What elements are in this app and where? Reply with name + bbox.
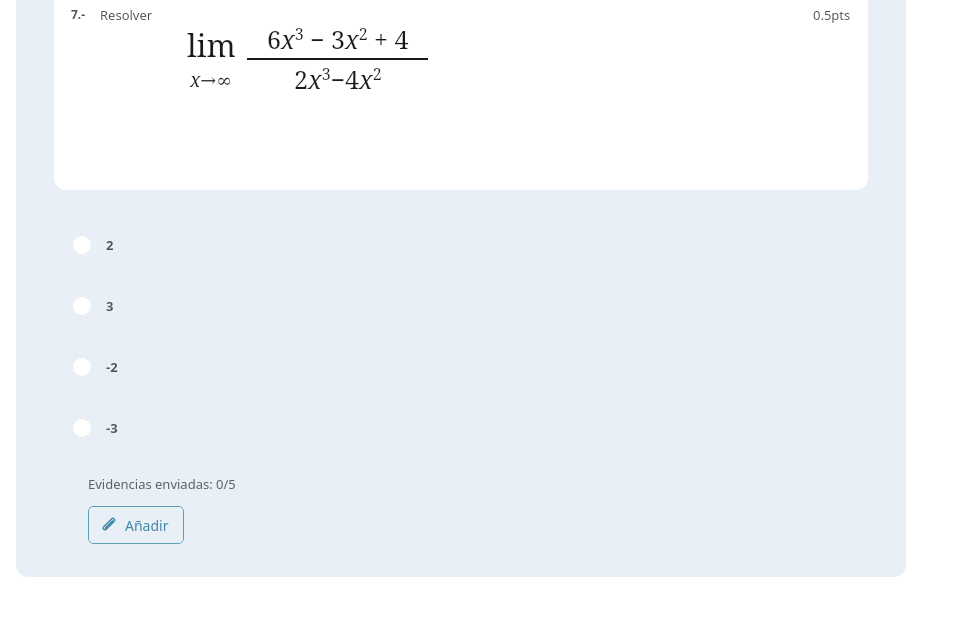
- staticText: 6x3 − 3x2 + 4: [267, 22, 409, 56]
- button[interactable]: 3: [72, 288, 272, 324]
- staticText: Resolver: [100, 6, 153, 24]
- staticText: 0.5pts: [813, 6, 851, 24]
- staticText: -2: [106, 358, 118, 376]
- staticText: 3: [106, 297, 114, 315]
- staticText: Evidencias enviadas: 0/5: [88, 475, 236, 493]
- staticText: lim: [187, 24, 236, 66]
- button[interactable]: -3: [72, 410, 272, 446]
- other: Adjuntar evidencia: [101, 517, 117, 533]
- button[interactable]: Adjuntar evidencia: [88, 506, 184, 544]
- staticText: x→∞: [190, 67, 233, 93]
- staticText: Añadir: [125, 516, 169, 535]
- staticText: 2x3−4x2: [294, 62, 382, 96]
- staticText: 7.-: [71, 6, 86, 22]
- staticText: -3: [106, 419, 118, 437]
- button[interactable]: 2: [72, 227, 272, 263]
- button[interactable]: -2: [72, 349, 272, 385]
- staticText: 2: [106, 236, 114, 254]
